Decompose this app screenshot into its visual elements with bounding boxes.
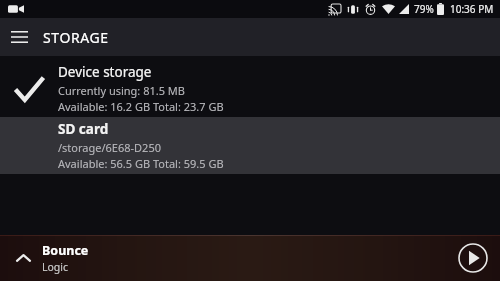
staticText: Bounce xyxy=(42,242,89,259)
staticText: Currently using: 81.5 MB xyxy=(58,83,185,98)
button[interactable]: SD card xyxy=(0,117,500,174)
staticText: SD card xyxy=(58,120,109,138)
staticText: Logic xyxy=(42,260,69,274)
button[interactable]: Open navigation menu xyxy=(0,18,38,56)
staticText: 10:36 PM xyxy=(450,2,494,16)
button[interactable]: Play xyxy=(454,239,492,277)
staticText: Device storage xyxy=(58,63,152,81)
button[interactable]: Expand player xyxy=(0,235,500,281)
staticText: /storage/6E68-D250 xyxy=(58,140,161,155)
button[interactable]: Expand player xyxy=(6,241,40,275)
staticText: Available: 16.2 GB Total: 23.7 GB xyxy=(58,99,224,114)
staticText: STORAGE xyxy=(43,28,109,47)
button[interactable]: Device storage xyxy=(0,60,500,117)
staticText: 79% xyxy=(414,2,434,16)
staticText: Available: 56.5 GB Total: 59.5 GB xyxy=(58,156,224,171)
